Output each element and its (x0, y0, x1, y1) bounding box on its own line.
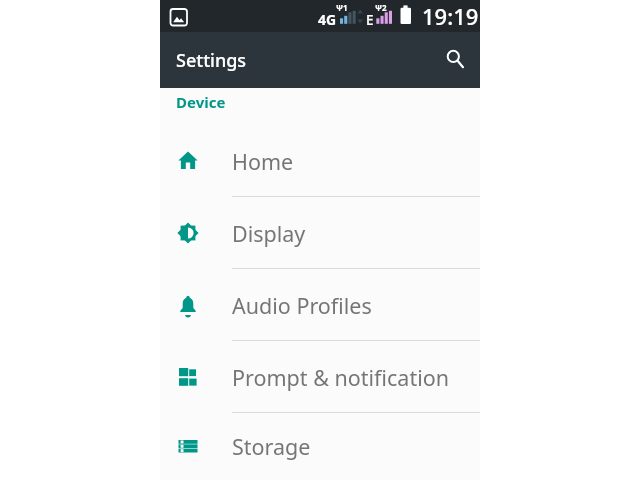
button[interactable] (436, 38, 480, 82)
staticText: Device (176, 92, 226, 112)
button[interactable]: Storage (160, 413, 480, 480)
staticText: Prompt & notification (232, 363, 450, 392)
button[interactable]: Audio Profiles (160, 269, 480, 341)
staticText: Storage (232, 432, 311, 461)
button[interactable]: Display (160, 197, 480, 269)
staticText: 4G (318, 10, 337, 29)
staticText: E (366, 11, 374, 29)
staticText: Display (232, 219, 306, 248)
button[interactable]: Home (160, 125, 480, 197)
staticText: 19:19 (422, 1, 479, 31)
staticText: Settings (176, 48, 247, 73)
staticText: Ψ2 (375, 2, 387, 13)
staticText: Ψ1 (336, 2, 348, 13)
staticText: Home (232, 147, 294, 176)
button[interactable]: Prompt & notification (160, 341, 480, 413)
staticText: Audio Profiles (232, 291, 372, 320)
